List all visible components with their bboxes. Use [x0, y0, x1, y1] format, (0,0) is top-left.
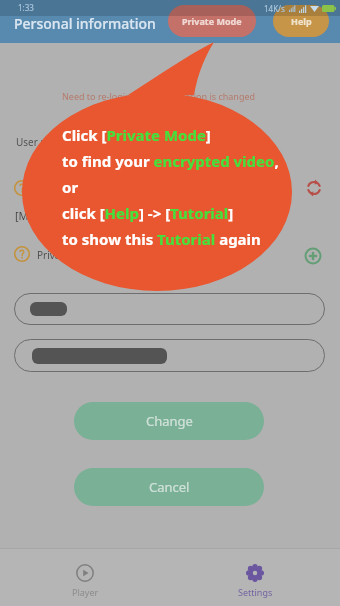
button[interactable]	[14, 339, 325, 372]
staticText: Change	[146, 412, 193, 430]
staticText: Private Mode	[37, 248, 100, 262]
staticText: Click [Private Mode]	[62, 125, 211, 145]
button[interactable]: Player	[0, 548, 170, 606]
staticText: User name	[16, 135, 68, 149]
staticText: click [Help] -> [Tutorial]	[62, 203, 234, 223]
button[interactable]: Private Mode	[168, 5, 256, 37]
staticText: [My account]	[15, 208, 82, 223]
button[interactable]: Help	[273, 5, 329, 37]
staticText: Help	[291, 15, 312, 27]
button[interactable]: Cancel	[74, 468, 264, 506]
staticText: or	[62, 177, 79, 197]
staticText: to find your encrypted video,	[62, 151, 279, 171]
staticText: 1:33	[18, 2, 34, 13]
button[interactable]: Help	[14, 180, 30, 196]
staticText: Player	[72, 586, 99, 598]
staticText: Need to re-login if the information is c…	[62, 90, 256, 102]
staticText: to show this Tutorial again	[62, 229, 261, 249]
staticText: Settings	[238, 586, 273, 598]
button[interactable]: Change	[74, 402, 264, 440]
button[interactable]: Help	[14, 246, 30, 262]
staticText: Personal information	[14, 14, 156, 33]
staticText: Private Mode	[182, 15, 242, 27]
button[interactable]: Add	[303, 246, 323, 266]
button[interactable]	[14, 293, 325, 325]
button[interactable]: Settings	[170, 548, 340, 606]
staticText: Cancel	[149, 478, 190, 496]
button[interactable]: Refresh	[305, 179, 323, 197]
staticText: 14K/s	[264, 3, 285, 14]
